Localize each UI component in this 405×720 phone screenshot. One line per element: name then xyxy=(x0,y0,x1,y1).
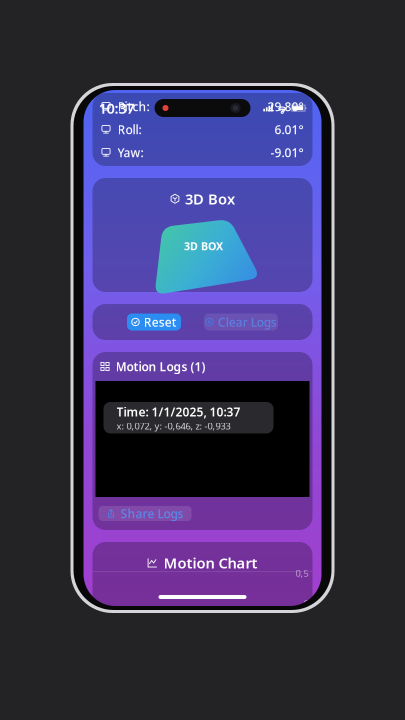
staticText: 29.80° xyxy=(267,98,303,114)
staticText: Roll: xyxy=(117,121,141,137)
staticText: x: 0,072, y: -0,646, z: -0,933 xyxy=(116,420,230,432)
staticText: 6.01° xyxy=(274,121,303,137)
staticText: -9.01° xyxy=(270,144,303,160)
staticText: Pitch: xyxy=(117,98,149,114)
staticText: Share Logs xyxy=(120,505,183,521)
button[interactable]: Clear Logs xyxy=(204,313,278,330)
staticText: 0 xyxy=(303,597,308,610)
staticText: Motion Chart xyxy=(163,553,257,572)
staticText: 0,5 xyxy=(295,567,308,579)
staticText: 3D Box xyxy=(185,189,235,208)
staticText: Reset xyxy=(144,314,177,330)
staticText: Yaw: xyxy=(117,144,143,160)
button[interactable]: Reset xyxy=(127,313,181,330)
staticText: 10:37 xyxy=(98,98,134,118)
staticText: Clear Logs xyxy=(218,314,277,330)
staticText: Motion Logs (1) xyxy=(115,358,205,374)
staticText: Time: 1/1/2025, 10:37 xyxy=(116,404,240,420)
staticText: 3D BOX xyxy=(184,239,223,253)
button[interactable]: Share Logs xyxy=(98,506,191,521)
